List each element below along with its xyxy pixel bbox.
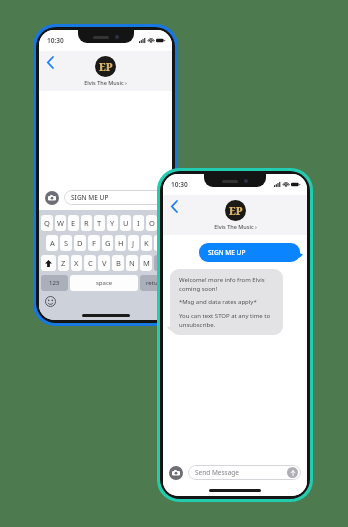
staticText: V	[102, 258, 107, 268]
button[interactable]: Camera	[169, 466, 183, 480]
button[interactable]: D	[74, 235, 86, 251]
staticText: L	[158, 238, 162, 248]
staticText: K	[144, 238, 149, 248]
button[interactable]: U	[120, 215, 131, 231]
button[interactable]: Delete	[154, 255, 170, 271]
staticText: SIGN ME UP	[208, 248, 246, 257]
staticText: T	[97, 218, 102, 228]
staticText: Q	[44, 218, 50, 228]
button[interactable]: B	[112, 255, 124, 271]
button[interactable]: H	[115, 235, 126, 251]
button[interactable]: SIGN ME UP	[199, 243, 300, 262]
button[interactable]: Shift	[41, 255, 56, 271]
staticText: S	[64, 238, 69, 248]
button[interactable]: W	[55, 215, 66, 231]
button[interactable]: Send Message	[188, 465, 301, 480]
button[interactable]: T	[94, 215, 105, 231]
button[interactable]: J	[128, 235, 139, 251]
staticText: O	[149, 218, 155, 228]
button[interactable]: Q	[41, 215, 53, 231]
staticText: C	[88, 258, 93, 268]
staticText: SIGN ME UP	[71, 193, 109, 202]
staticText: M	[143, 258, 150, 268]
button[interactable]: Emoji	[45, 296, 56, 307]
staticText: 10:30	[47, 36, 64, 45]
staticText: *Msg and data rates apply*	[179, 298, 257, 306]
button[interactable]: SIGN ME UP	[64, 190, 166, 205]
button[interactable]: P	[159, 215, 170, 231]
staticText: Send Message	[195, 468, 240, 477]
button[interactable]: Welcome! more info from Elvis coming soo…	[170, 269, 283, 335]
staticText: Z	[61, 258, 66, 268]
button[interactable]: Send	[287, 467, 298, 478]
button[interactable]: F	[88, 235, 100, 251]
button[interactable]: Y	[107, 215, 118, 231]
staticText: U	[123, 218, 129, 228]
staticText: You can text STOP at any time to unsubsc…	[179, 312, 274, 328]
staticText: 10:30	[171, 180, 188, 189]
button[interactable]: M	[140, 255, 152, 271]
button[interactable]: EP	[214, 200, 257, 230]
button[interactable]: L	[154, 235, 165, 251]
button[interactable]: N	[126, 255, 138, 271]
button[interactable]: O	[146, 215, 157, 231]
button[interactable]: 123	[41, 275, 68, 291]
staticText: space	[96, 279, 113, 287]
button[interactable]: Back	[42, 54, 59, 71]
button[interactable]: R	[81, 215, 92, 231]
staticText: D	[77, 238, 83, 248]
button[interactable]: G	[102, 235, 113, 251]
staticText: B	[116, 258, 121, 268]
staticText: EP	[99, 60, 113, 74]
staticText: Welcome! more info from Elvis coming soo…	[179, 276, 274, 292]
staticText: N	[129, 258, 135, 268]
button[interactable]: return	[140, 275, 170, 291]
button[interactable]: A	[46, 235, 58, 251]
staticText: J	[132, 238, 135, 248]
staticText: A	[50, 238, 55, 248]
button[interactable]: Z	[58, 255, 69, 271]
button[interactable]: EP	[84, 56, 127, 86]
button[interactable]: E	[68, 215, 79, 231]
staticText: X	[74, 258, 79, 268]
staticText: R	[84, 218, 89, 228]
button[interactable]: C	[84, 255, 96, 271]
button[interactable]: V	[98, 255, 110, 271]
staticText: Elvis The Music ›	[214, 223, 257, 230]
button[interactable]: K	[141, 235, 152, 251]
staticText: W	[57, 218, 64, 228]
button[interactable]: Back	[166, 198, 183, 215]
staticText: H	[118, 238, 124, 248]
staticText: Y	[110, 218, 115, 228]
staticText: EP	[229, 204, 243, 218]
staticText: I	[137, 218, 140, 228]
button[interactable]: I	[133, 215, 144, 231]
staticText: Elvis The Music ›	[84, 79, 127, 86]
staticText: F	[92, 238, 96, 248]
button[interactable]: S	[60, 235, 72, 251]
staticText: G	[105, 238, 111, 248]
button[interactable]: space	[70, 275, 138, 291]
staticText: E	[71, 218, 76, 228]
staticText: 123	[49, 279, 60, 287]
staticText: return	[146, 279, 164, 287]
staticText: P	[162, 218, 167, 228]
button[interactable]: X	[71, 255, 82, 271]
button[interactable]: Camera	[45, 191, 59, 205]
